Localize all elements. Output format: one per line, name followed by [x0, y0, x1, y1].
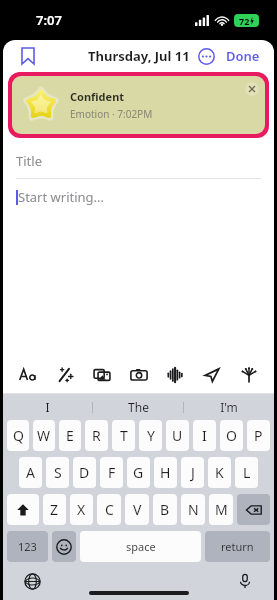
staticText: space	[126, 539, 156, 554]
button[interactable]: W	[33, 420, 55, 451]
staticText: Q	[13, 426, 24, 445]
staticText: Z	[50, 500, 59, 519]
staticText: B	[160, 500, 170, 519]
button[interactable]: Photos	[87, 360, 117, 390]
button[interactable]: More options	[192, 42, 220, 70]
staticText: H	[160, 463, 171, 482]
button[interactable]: N	[181, 494, 205, 525]
staticText: R	[92, 426, 101, 445]
button[interactable]: Y	[139, 420, 162, 451]
button[interactable]: Confident	[12, 76, 265, 134]
staticText: T	[120, 426, 128, 445]
button[interactable]: P	[247, 420, 270, 451]
staticText: S	[54, 463, 62, 482]
button[interactable]: 123	[7, 531, 48, 562]
button[interactable]: Remove emotion	[245, 82, 259, 96]
button[interactable]: Add entry	[234, 360, 264, 390]
button[interactable]: return	[205, 531, 270, 562]
button[interactable]: V	[125, 494, 149, 525]
staticText: Start writing...	[18, 188, 105, 206]
staticText: A	[26, 463, 35, 482]
staticText: The	[128, 399, 149, 415]
staticText: 72	[239, 15, 250, 27]
staticText: L	[243, 463, 251, 482]
staticText: V	[133, 500, 142, 519]
button[interactable]: Magic wand	[50, 360, 80, 390]
staticText: I	[202, 426, 207, 445]
staticText: I'm	[220, 399, 238, 415]
button[interactable]: F	[100, 457, 123, 488]
button[interactable]: space	[80, 531, 201, 562]
button[interactable]: D	[73, 457, 96, 488]
button[interactable]: L	[235, 457, 258, 488]
button[interactable]: M	[209, 494, 233, 525]
staticText: Emotion · 7:02PM	[70, 107, 153, 121]
button[interactable]: O	[220, 420, 243, 451]
button[interactable]: Shift	[7, 494, 39, 525]
button[interactable]: Done	[220, 43, 266, 69]
staticText: N	[188, 500, 199, 519]
staticText: G	[133, 463, 144, 482]
button[interactable]: Backspace	[237, 494, 270, 525]
button[interactable]: Audio recording	[160, 360, 190, 390]
staticText: K	[215, 463, 224, 482]
button[interactable]: U	[166, 420, 189, 451]
button[interactable]: C	[97, 494, 121, 525]
staticText: Done	[226, 47, 260, 65]
button[interactable]: X	[70, 494, 93, 525]
button[interactable]: G	[127, 457, 150, 488]
staticText: X	[77, 500, 86, 519]
button[interactable]: R	[85, 420, 108, 451]
button[interactable]: B	[153, 494, 177, 525]
button[interactable]: I	[3, 394, 92, 420]
button[interactable]: Change keyboard	[19, 568, 45, 594]
staticText: 123	[18, 539, 37, 554]
staticText: C	[105, 500, 114, 519]
button[interactable]: I'm	[184, 394, 274, 420]
staticText: J	[191, 463, 195, 482]
button[interactable]: J	[181, 457, 204, 488]
button[interactable]: S	[46, 457, 69, 488]
staticText: Y	[147, 426, 155, 445]
staticText: F	[108, 463, 116, 482]
staticText: U	[172, 426, 183, 445]
button[interactable]: Emoji	[52, 531, 76, 562]
button[interactable]: K	[208, 457, 231, 488]
button[interactable]: Text format	[13, 360, 43, 390]
staticText: E	[66, 426, 74, 445]
button[interactable]: Location	[197, 360, 227, 390]
staticText: M	[215, 500, 228, 519]
button[interactable]: H	[154, 457, 177, 488]
staticText: 7:07	[36, 11, 62, 29]
button[interactable]: I	[193, 420, 216, 451]
button[interactable]: T	[112, 420, 135, 451]
button[interactable]: Dictate	[232, 568, 258, 594]
button[interactable]: Camera	[124, 360, 154, 390]
button[interactable]: A	[19, 457, 42, 488]
button[interactable]: The	[93, 394, 183, 420]
staticText: return	[221, 539, 254, 554]
button[interactable]: Q	[7, 420, 29, 451]
button[interactable]: Bookmark	[11, 40, 45, 72]
staticText: D	[79, 463, 90, 482]
staticText: O	[226, 426, 237, 445]
staticText: Confident	[70, 89, 125, 104]
staticText: W	[37, 426, 51, 445]
staticText: Thursday, Jul 11	[88, 47, 190, 65]
staticText: P	[254, 426, 263, 445]
button[interactable]: E	[59, 420, 81, 451]
button[interactable]: Z	[43, 494, 66, 525]
staticText: I	[45, 399, 50, 415]
staticText: Title	[16, 152, 42, 170]
